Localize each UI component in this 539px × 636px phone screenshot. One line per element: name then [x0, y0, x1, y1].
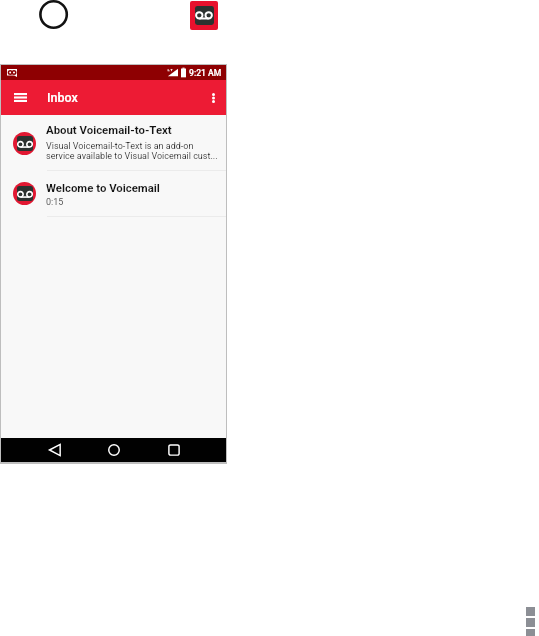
button[interactable]: Recent apps: [154, 438, 194, 462]
button[interactable]: Open navigation menu: [6, 80, 34, 115]
staticText: Inbox: [47, 90, 78, 105]
button[interactable]: About Voicemail-to-Text: [1, 115, 226, 170]
staticText: Welcome to Voicemail: [46, 181, 160, 194]
staticText: About Voicemail-to-Text: [46, 123, 172, 136]
staticText: 0:15: [46, 197, 64, 208]
button[interactable]: Back: [35, 438, 75, 462]
button[interactable]: Home: [94, 438, 134, 462]
button[interactable]: More options: [201, 80, 225, 115]
button[interactable]: Voicemail app icon: [190, 1, 218, 30]
staticText: 9:21 AM: [189, 68, 222, 78]
staticText: Visual Voicemail-to-Text is an add-on se…: [46, 141, 218, 161]
button[interactable]: Welcome to Voicemail: [1, 171, 226, 216]
